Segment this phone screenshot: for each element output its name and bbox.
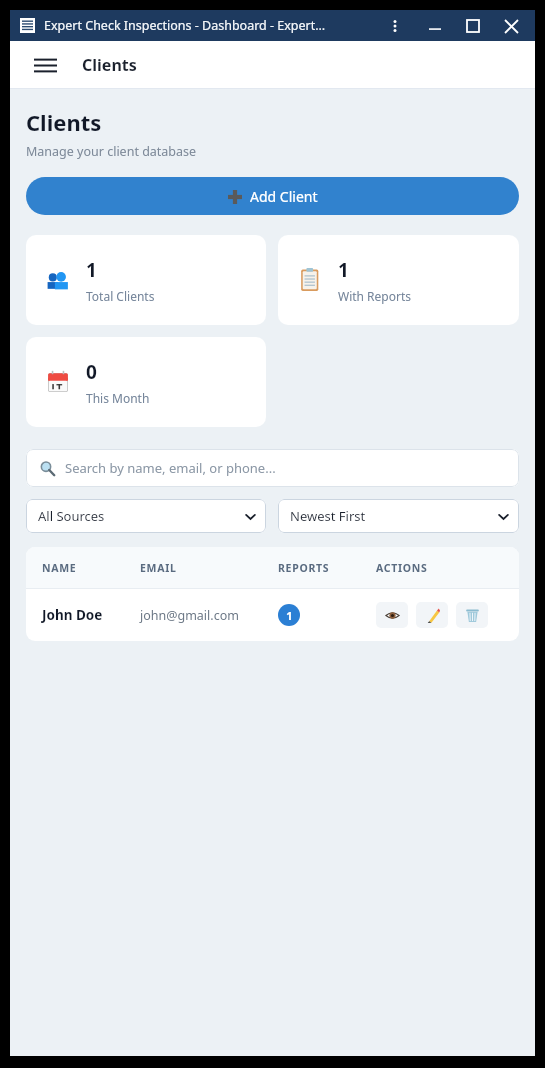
- button[interactable]: Maximize: [459, 12, 487, 40]
- staticText: john@gmail.com: [140, 607, 239, 624]
- button[interactable]: Newest First: [278, 499, 519, 533]
- button[interactable]: John Doe: [26, 589, 519, 641]
- staticText: 1: [338, 257, 349, 283]
- button[interactable]: Search by name, email, or phone...: [26, 449, 519, 487]
- staticText: NAME: [42, 561, 77, 575]
- button[interactable]: Minimize: [421, 12, 449, 40]
- button[interactable]: All Sources: [26, 499, 266, 533]
- staticText: Manage your client database: [26, 143, 197, 160]
- staticText: All Sources: [38, 507, 105, 525]
- staticText: Search by name, email, or phone...: [65, 459, 276, 477]
- staticText: With Reports: [338, 288, 412, 304]
- button[interactable]: Add Client: [26, 177, 519, 215]
- staticText: ACTIONS: [376, 561, 428, 575]
- button[interactable]: 0: [26, 337, 266, 427]
- button[interactable]: View: [376, 602, 408, 628]
- button[interactable]: 1: [278, 235, 519, 325]
- staticText: 0: [86, 359, 97, 385]
- button[interactable]: 1: [278, 604, 300, 626]
- staticText: Total Clients: [86, 288, 155, 304]
- button[interactable]: Edit: [416, 602, 448, 628]
- button[interactable]: Delete: [456, 602, 488, 628]
- staticText: 1: [86, 257, 97, 283]
- staticText: Clients: [82, 54, 137, 76]
- staticText: REPORTS: [278, 561, 330, 575]
- staticText: Add Client: [250, 187, 318, 206]
- staticText: Expert Check Inspections - Dashboard - E…: [44, 17, 326, 34]
- button[interactable]: 1: [26, 235, 266, 325]
- staticText: John Doe: [42, 606, 103, 624]
- button[interactable]: More options: [381, 12, 409, 40]
- staticText: 1: [286, 608, 293, 623]
- button[interactable]: Menu: [26, 46, 64, 84]
- staticText: EMAIL: [140, 561, 177, 575]
- button[interactable]: Close: [497, 12, 525, 40]
- staticText: This Month: [86, 390, 150, 406]
- staticText: Clients: [26, 107, 102, 137]
- staticText: Newest First: [290, 507, 366, 525]
